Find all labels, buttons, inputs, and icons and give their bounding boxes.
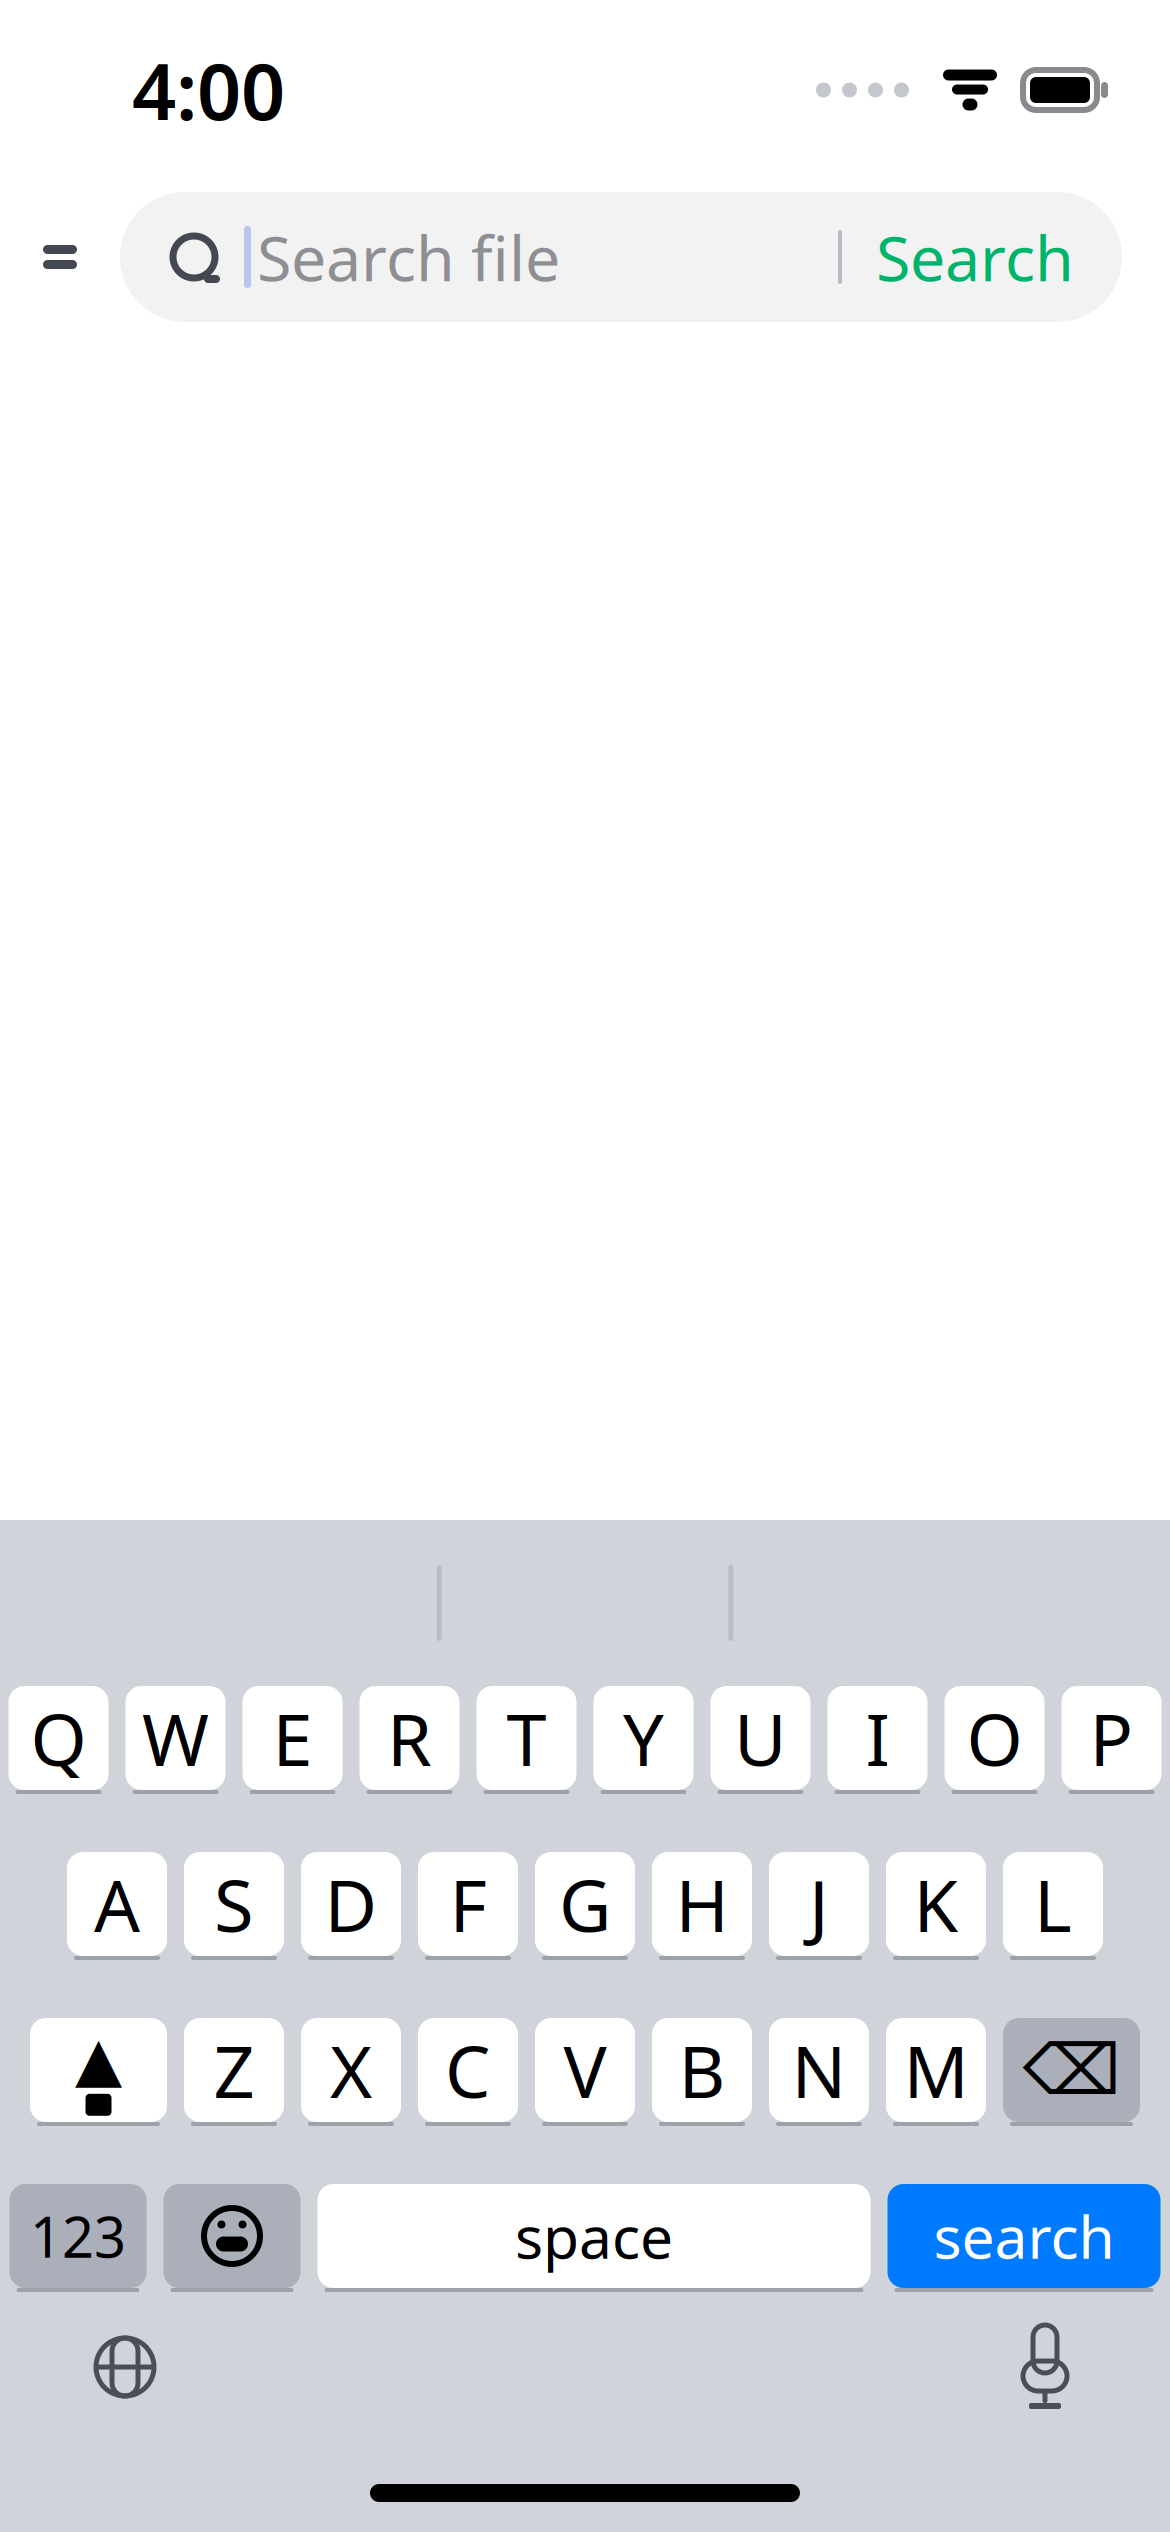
button[interactable]: Switch keyboard xyxy=(50,2302,200,2432)
staticText: E xyxy=(272,1690,312,1786)
staticText: I xyxy=(865,1690,889,1786)
staticText: Q xyxy=(30,1690,86,1786)
staticText: C xyxy=(445,2022,491,2118)
button[interactable]: T xyxy=(476,1686,576,1794)
staticText: Y xyxy=(623,1690,664,1786)
button[interactable]: L xyxy=(1003,1852,1103,1960)
staticText: D xyxy=(324,1856,377,1952)
staticText: R xyxy=(387,1690,432,1786)
button[interactable]: S xyxy=(184,1852,284,1960)
button[interactable]: G xyxy=(535,1852,635,1960)
button[interactable]: D xyxy=(301,1852,401,1960)
button[interactable]: Search file xyxy=(120,192,1122,322)
button[interactable]: Delete xyxy=(1003,2018,1140,2126)
button[interactable]: F xyxy=(418,1852,518,1960)
staticText: A xyxy=(94,1856,140,1952)
button[interactable]: Q xyxy=(8,1686,108,1794)
staticText: K xyxy=(913,1856,958,1952)
staticText: V xyxy=(563,2022,606,2118)
staticText: F xyxy=(449,1856,486,1952)
staticText: ⌫ xyxy=(1022,2031,1120,2109)
staticText: 4:00 xyxy=(132,39,285,141)
button[interactable]: Back xyxy=(0,192,120,322)
staticText: O xyxy=(966,1690,1022,1786)
staticText: L xyxy=(1034,1856,1072,1952)
staticText: M xyxy=(903,2022,968,2118)
staticText: P xyxy=(1089,1690,1133,1786)
button[interactable]: Dictate xyxy=(970,2302,1120,2432)
staticText: space xyxy=(515,2197,673,2275)
button[interactable]: P xyxy=(1061,1686,1161,1794)
button[interactable]: V xyxy=(535,2018,635,2126)
button[interactable]: J xyxy=(769,1852,869,1960)
staticText: J xyxy=(809,1856,829,1952)
button[interactable]: O xyxy=(944,1686,1044,1794)
staticText: T xyxy=(506,1690,546,1786)
button[interactable]: A xyxy=(67,1852,167,1960)
button[interactable]: 123 xyxy=(9,2184,146,2292)
button[interactable]: Shift xyxy=(30,2018,167,2126)
button[interactable]: C xyxy=(418,2018,518,2126)
button[interactable]: R xyxy=(359,1686,459,1794)
button[interactable]: X xyxy=(301,2018,401,2126)
staticText: S xyxy=(214,1856,254,1952)
staticText: Search xyxy=(876,215,1074,299)
staticText: Z xyxy=(213,2022,254,2118)
button[interactable]: search xyxy=(887,2184,1160,2292)
button[interactable]: M xyxy=(886,2018,986,2126)
staticText: search xyxy=(933,2197,1114,2275)
staticText: ▲ xyxy=(75,2024,122,2094)
staticText: Search file xyxy=(257,215,560,299)
staticText: H xyxy=(675,1856,728,1952)
button[interactable]: Y xyxy=(593,1686,693,1794)
button[interactable]: E xyxy=(242,1686,342,1794)
staticText: X xyxy=(330,2022,372,2118)
staticText: U xyxy=(734,1690,787,1786)
staticText: B xyxy=(678,2022,725,2118)
button[interactable]: I xyxy=(827,1686,927,1794)
button[interactable]: K xyxy=(886,1852,986,1960)
button[interactable]: Emoji xyxy=(163,2184,300,2292)
staticText: N xyxy=(791,2022,846,2118)
button[interactable]: H xyxy=(652,1852,752,1960)
staticText: G xyxy=(559,1856,611,1952)
button[interactable]: U xyxy=(710,1686,810,1794)
button[interactable]: N xyxy=(769,2018,869,2126)
button[interactable]: W xyxy=(125,1686,225,1794)
button[interactable]: space xyxy=(317,2184,870,2292)
staticText: 123 xyxy=(30,2199,126,2273)
button[interactable]: B xyxy=(652,2018,752,2126)
staticText: W xyxy=(142,1690,209,1786)
button[interactable]: Z xyxy=(184,2018,284,2126)
